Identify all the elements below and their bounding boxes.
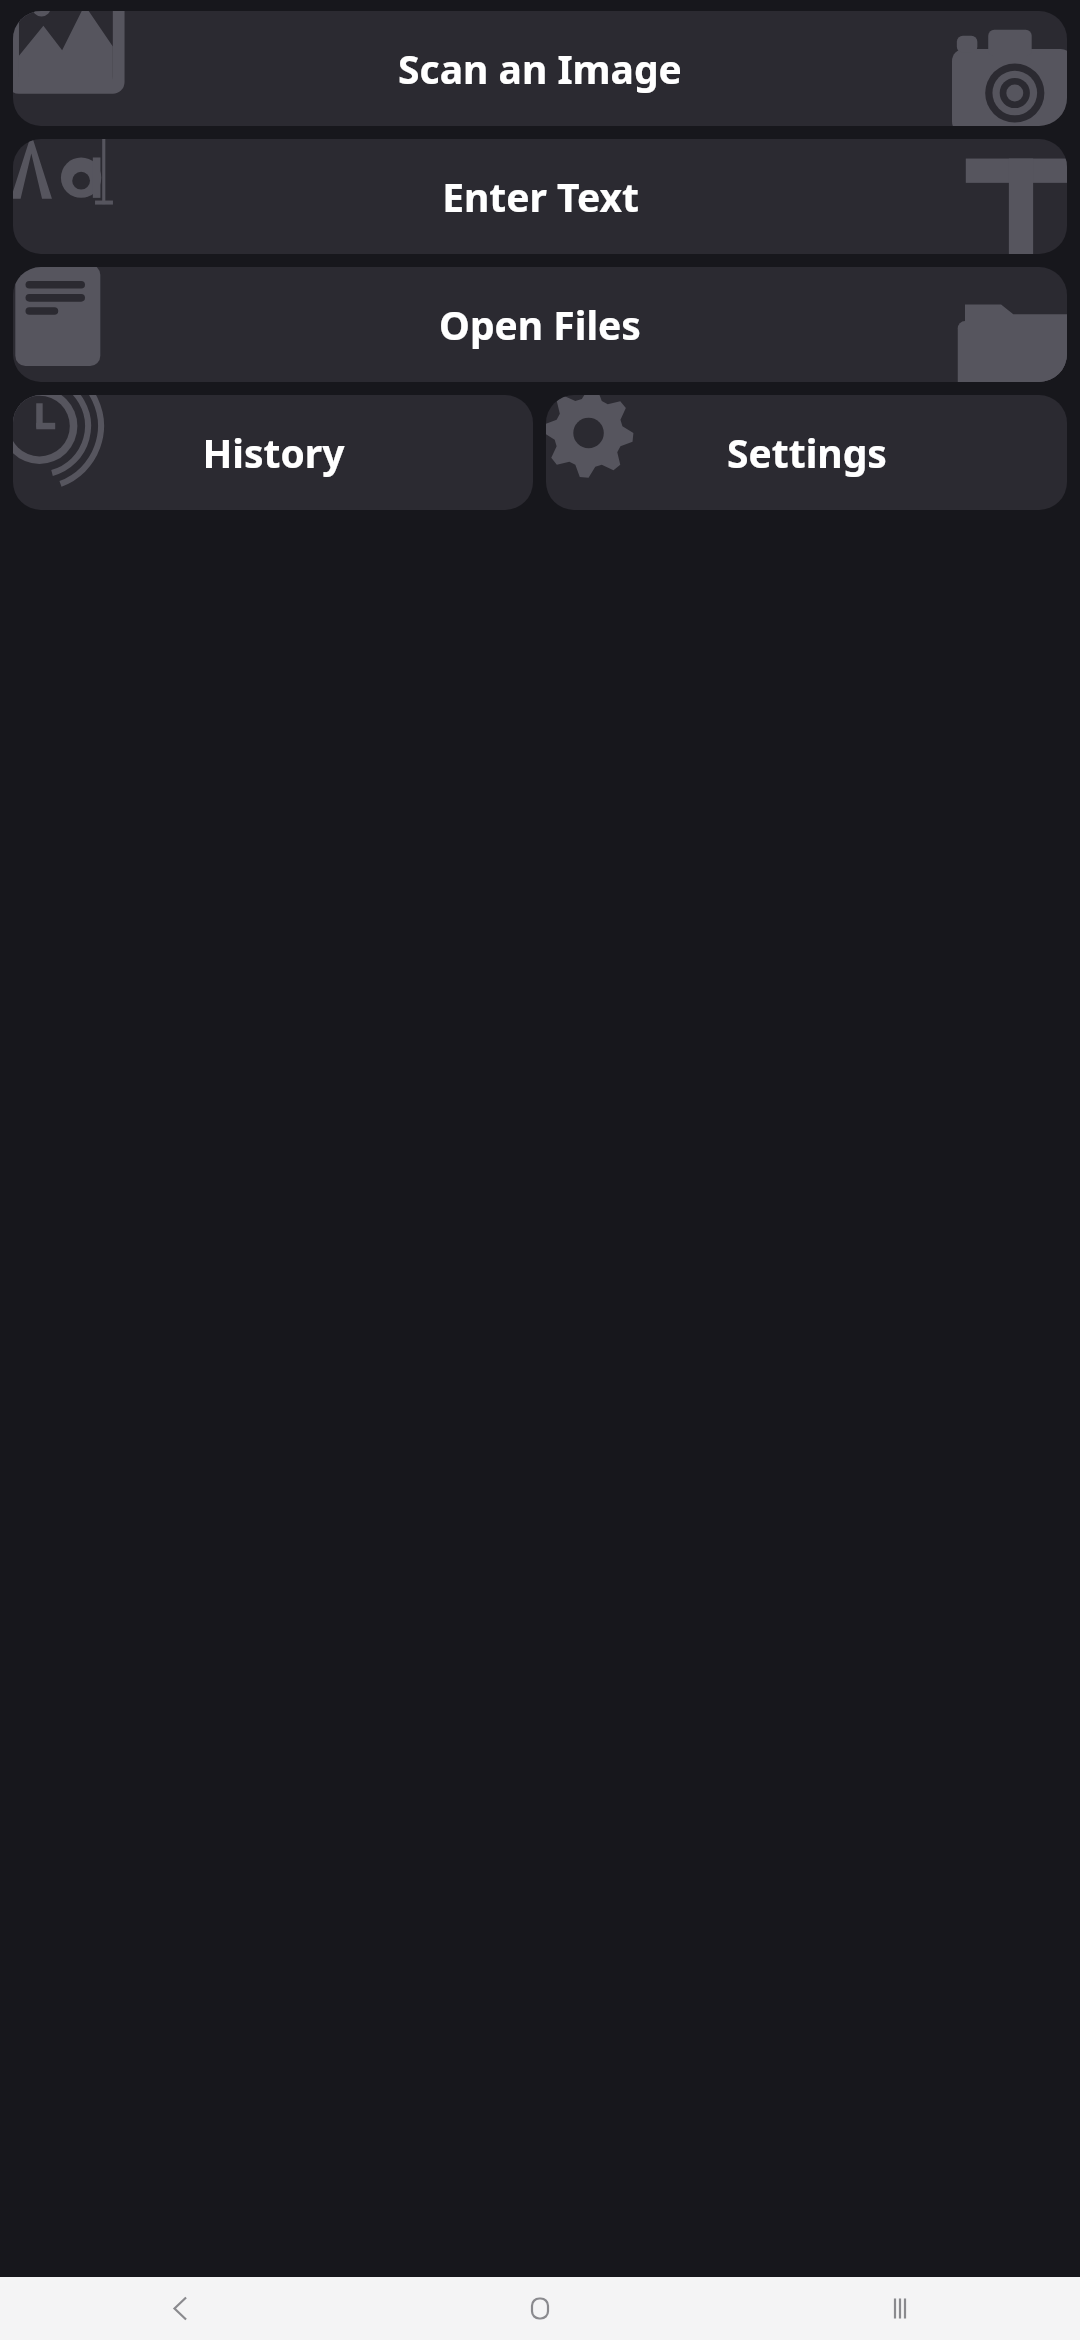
button[interactable]: History [13, 395, 533, 510]
staticText: Scan an Image [398, 42, 682, 95]
staticText: Open Files [439, 298, 641, 351]
staticText: Settings [727, 426, 887, 479]
button[interactable]: Open Files [13, 267, 1067, 382]
button[interactable]: Settings [546, 395, 1067, 510]
button[interactable]: Enter Text [13, 139, 1067, 254]
button[interactable]: Home [360, 2277, 720, 2340]
staticText: Enter Text [442, 170, 639, 223]
staticText: History [202, 426, 345, 479]
button[interactable]: Scan an Image [13, 11, 1067, 126]
button[interactable]: Recents [720, 2277, 1080, 2340]
button[interactable]: Back [0, 2277, 360, 2340]
